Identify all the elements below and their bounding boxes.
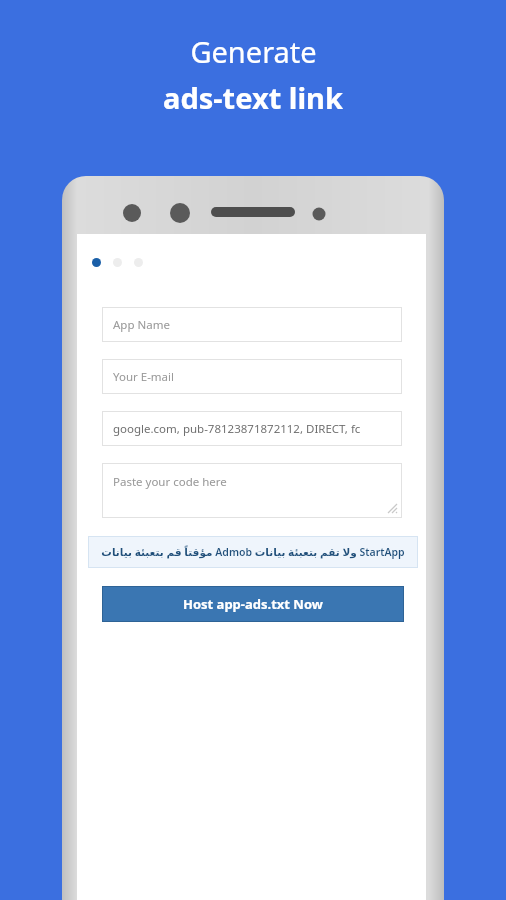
staticText: مؤقتاً قم بتعبئة بيانات Admob ولا تقم بت…	[101, 545, 405, 559]
staticText: Your E-mail	[113, 369, 174, 385]
button[interactable]: google.com, pub-78123871872112, DIRECT, …	[102, 411, 402, 446]
button[interactable]: Paste your code here	[102, 463, 402, 518]
staticText: Paste your code here	[113, 474, 227, 490]
staticText: google.com, pub-78123871872112, DIRECT, …	[113, 421, 361, 437]
staticText: Generate	[190, 32, 317, 71]
button[interactable]: App Name	[102, 307, 402, 342]
staticText: Host app-ads.txt Now	[183, 595, 323, 613]
button[interactable]: مؤقتاً قم بتعبئة بيانات Admob ولا تقم بت…	[88, 536, 418, 568]
button[interactable]: Your E-mail	[102, 359, 402, 394]
staticText: App Name	[113, 317, 170, 333]
staticText: ads-text link	[163, 78, 343, 117]
button[interactable]: Host app-ads.txt Now	[102, 586, 404, 622]
